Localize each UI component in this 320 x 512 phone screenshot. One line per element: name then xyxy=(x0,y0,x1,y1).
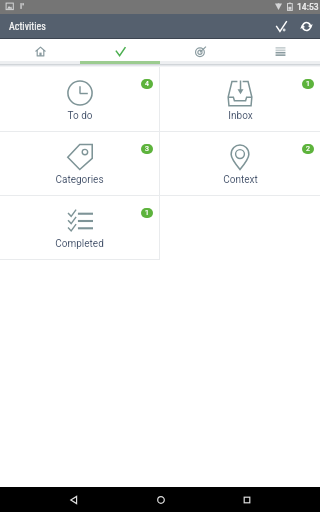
button[interactable]: Lists xyxy=(240,39,320,64)
button[interactable]: Home xyxy=(148,487,173,512)
staticText: 2 xyxy=(306,145,310,153)
button[interactable]: Refresh xyxy=(294,14,319,39)
staticText: 3 xyxy=(145,145,149,153)
button[interactable]: Focus xyxy=(160,39,240,64)
button[interactable]: Inbox xyxy=(160,67,320,131)
button[interactable]: Complete all xyxy=(269,14,294,39)
staticText: To do xyxy=(67,110,93,122)
staticText: 4 xyxy=(145,80,149,88)
button[interactable]: Context xyxy=(160,132,320,195)
button[interactable]: Categories xyxy=(0,132,159,195)
button[interactable]: Recents xyxy=(234,487,259,512)
button[interactable]: Completed xyxy=(0,196,159,259)
button[interactable]: To do xyxy=(0,67,159,131)
button[interactable]: Home xyxy=(0,39,80,64)
staticText: 1 xyxy=(145,209,149,217)
staticText: Context xyxy=(223,174,258,186)
staticText: Activities xyxy=(9,21,46,33)
staticText: Inbox xyxy=(228,110,253,122)
staticText: Completed xyxy=(55,238,104,250)
staticText: 14:53 xyxy=(297,2,319,12)
staticText: 1 xyxy=(306,80,310,88)
button[interactable]: Activities xyxy=(80,39,160,64)
button[interactable]: Back xyxy=(61,487,86,512)
staticText: Categories xyxy=(55,174,104,186)
